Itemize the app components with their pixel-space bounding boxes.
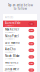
button[interactable]: Ava Cho xyxy=(3,47,37,54)
staticText: Mia Torres xyxy=(5,61,18,64)
staticText: 1.2M followers xyxy=(5,25,14,27)
button[interactable]: Noah Blake xyxy=(3,54,37,60)
staticText: Follow xyxy=(29,36,33,38)
staticText: 388K followers xyxy=(5,51,15,53)
staticText: 842K followers xyxy=(5,31,15,33)
staticText: Ava Cho xyxy=(5,47,16,51)
staticText: Follow xyxy=(29,49,33,51)
staticText: Noah Blake xyxy=(5,54,20,58)
staticText: Tap an artist below to follow xyxy=(7,3,32,10)
button[interactable]: Jonas Weir xyxy=(3,67,37,72)
button[interactable]: Mia Torres xyxy=(3,60,37,67)
staticText: 615K followers xyxy=(5,38,15,40)
staticText: Leo Marino xyxy=(5,41,20,44)
staticText: Max Keller xyxy=(5,28,19,31)
button[interactable]: Nina Patel xyxy=(3,34,37,40)
staticText: Aurora Vale xyxy=(5,21,21,25)
staticText: 190K followers xyxy=(5,64,15,66)
staticText: 271K followers xyxy=(5,58,15,60)
staticText: Follow xyxy=(29,23,33,25)
staticText: Nina Patel xyxy=(5,34,19,38)
staticText: 152K followers xyxy=(5,71,15,72)
staticText: Artists xyxy=(5,15,13,19)
staticText: Follow xyxy=(29,63,33,64)
button[interactable]: Max Keller xyxy=(3,27,37,34)
button[interactable]: Leo Marino xyxy=(3,40,37,47)
staticText: Follow xyxy=(29,56,33,58)
staticText: Follow xyxy=(29,30,33,31)
staticText: 430K followers xyxy=(5,45,15,46)
button[interactable]: Aurora Vale xyxy=(3,21,37,27)
staticText: Jonas Weir xyxy=(5,67,19,71)
staticText: Follow xyxy=(29,69,33,71)
staticText: Follow xyxy=(29,43,33,45)
